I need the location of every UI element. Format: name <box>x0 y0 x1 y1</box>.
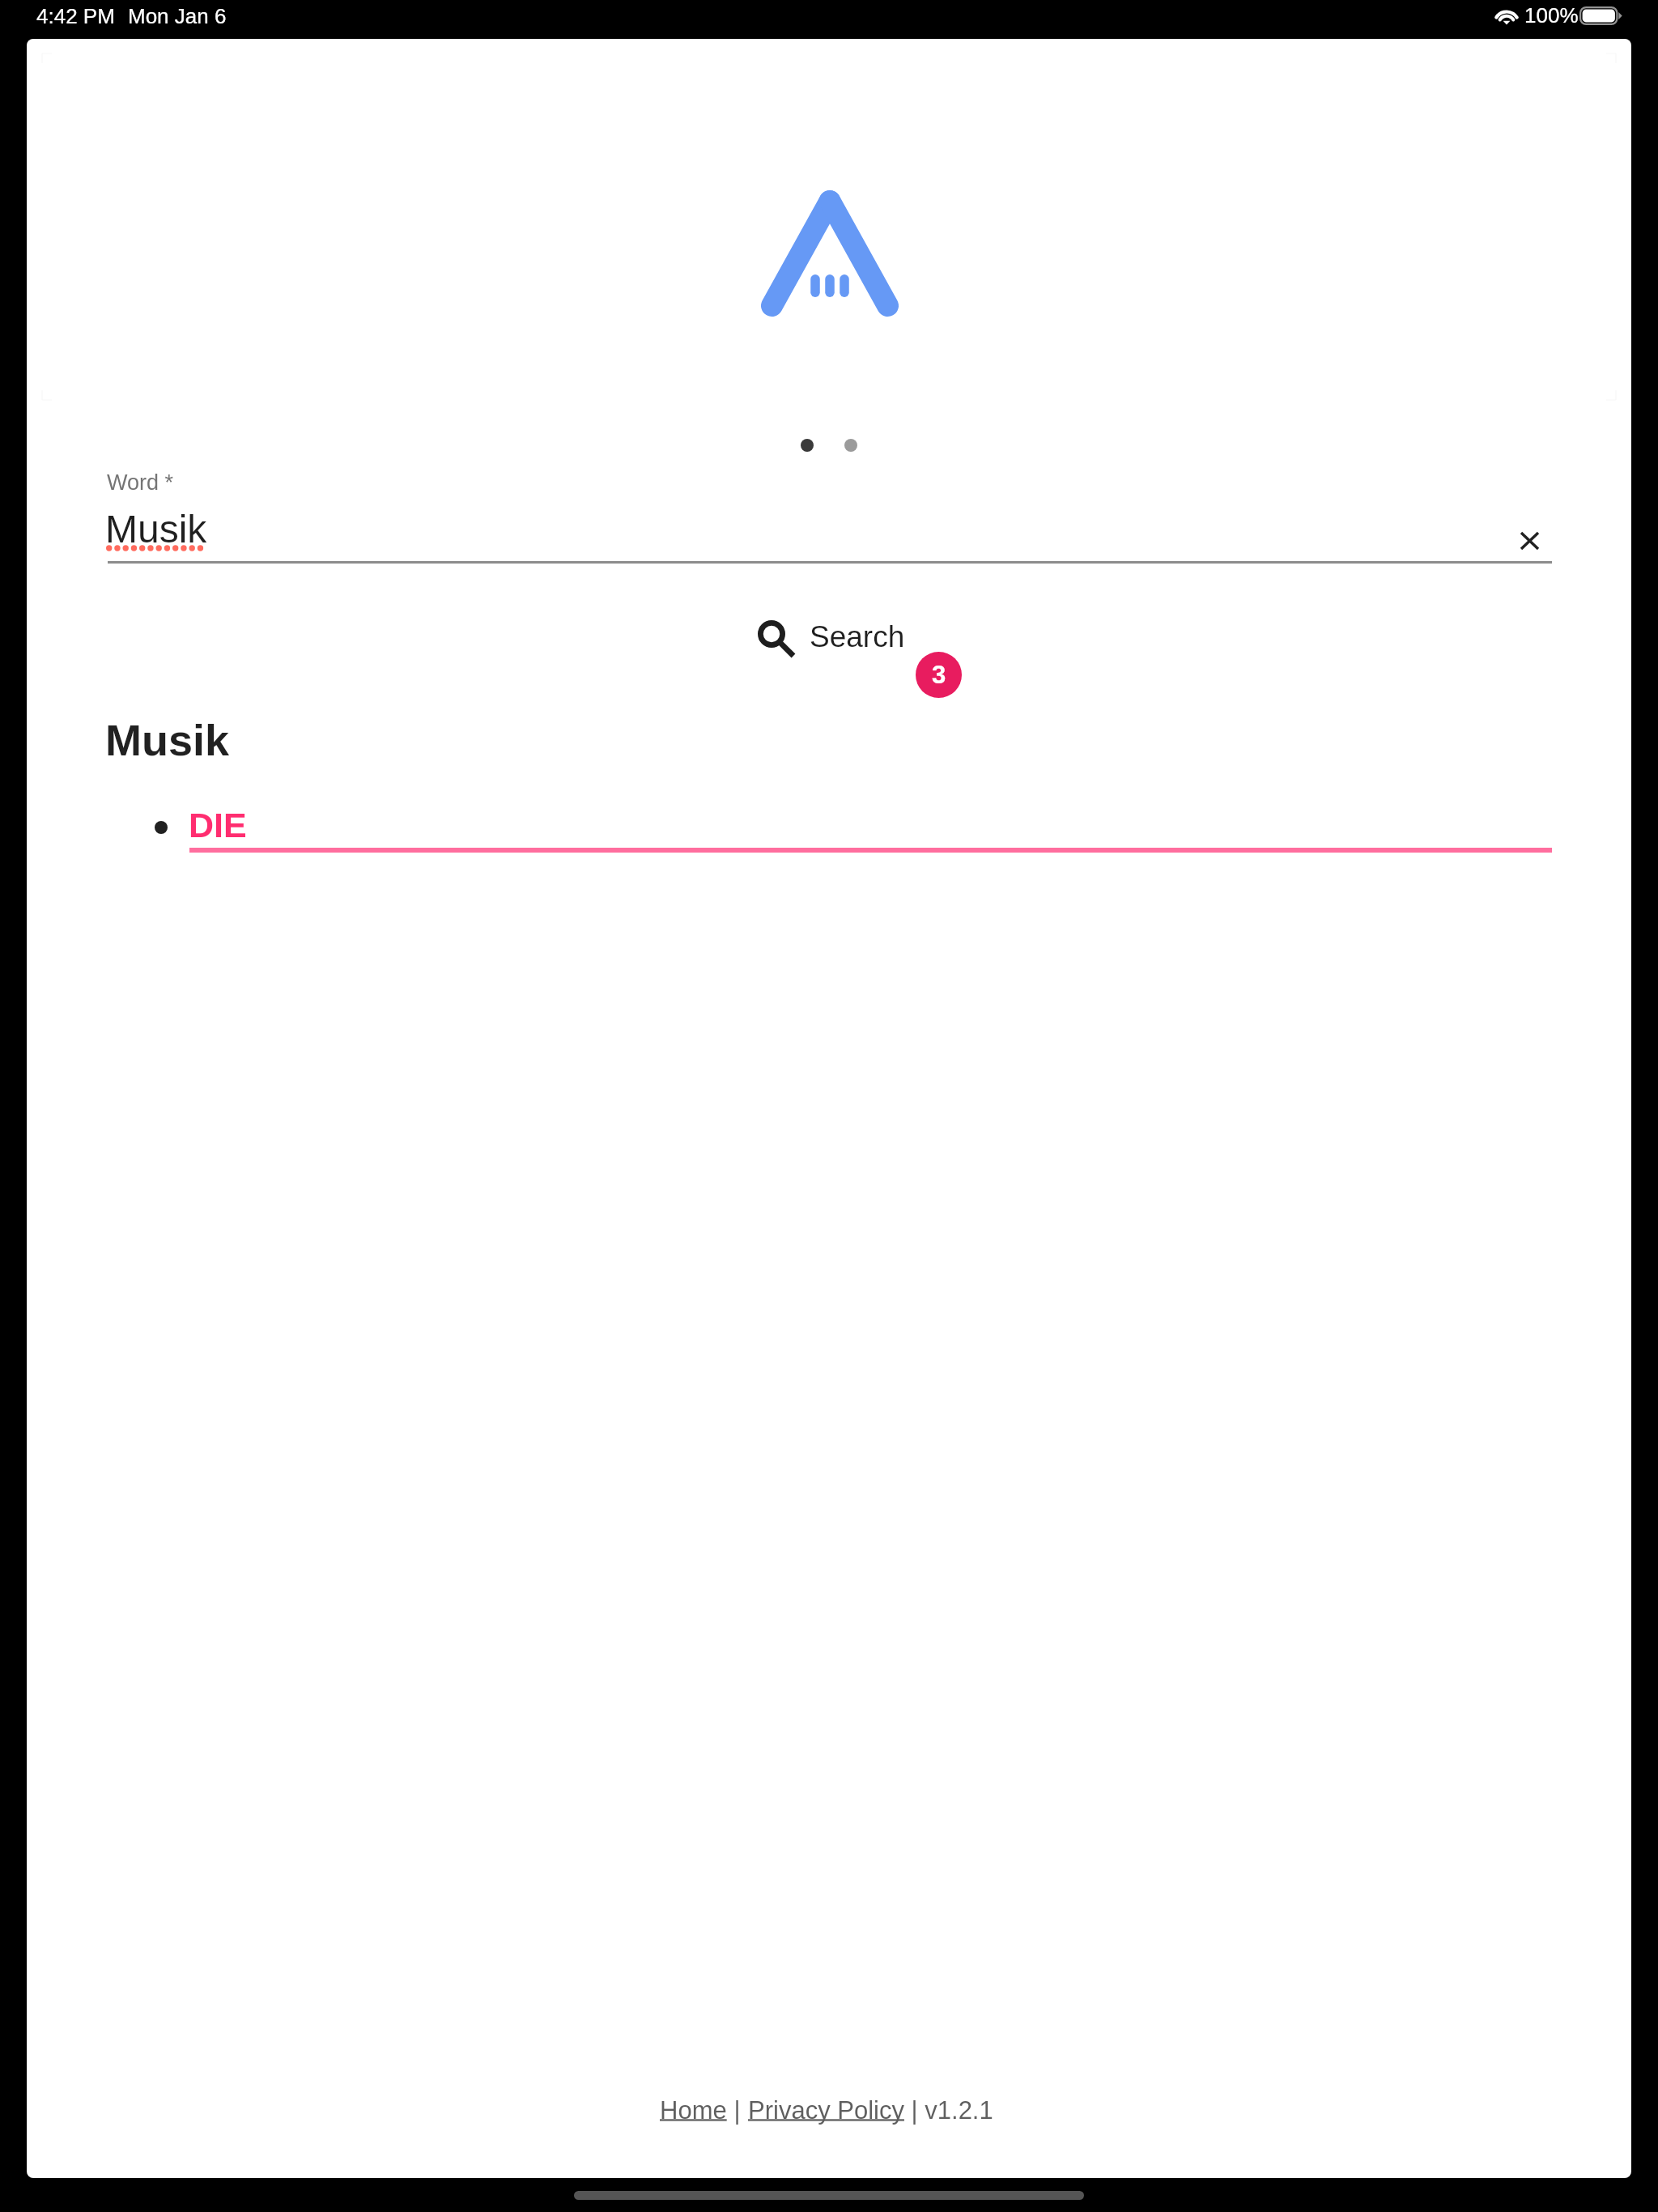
button[interactable]: Privacy Policy <box>748 2096 904 2125</box>
staticText: | <box>727 2096 748 2125</box>
button[interactable]: Clear text <box>1503 514 1556 567</box>
staticText: Mon Jan 6 <box>128 4 227 28</box>
staticText: 3 <box>932 661 946 689</box>
button[interactable]: Slide 2 <box>844 439 857 452</box>
button[interactable]: Search <box>753 611 908 661</box>
button[interactable]: Home <box>660 2096 727 2125</box>
button[interactable]: Slide 1 <box>801 439 814 452</box>
staticText: Word * <box>107 470 174 495</box>
staticText: | v1.2.1 <box>904 2096 993 2125</box>
staticText: 4:42 PM <box>36 4 115 28</box>
staticText: 100% <box>1524 3 1579 27</box>
staticText: Musik <box>105 508 207 551</box>
button[interactable]: 3 <box>916 652 962 698</box>
staticText: Search <box>810 620 905 653</box>
staticText: DIE <box>189 806 247 844</box>
staticText: Musik <box>105 716 230 764</box>
